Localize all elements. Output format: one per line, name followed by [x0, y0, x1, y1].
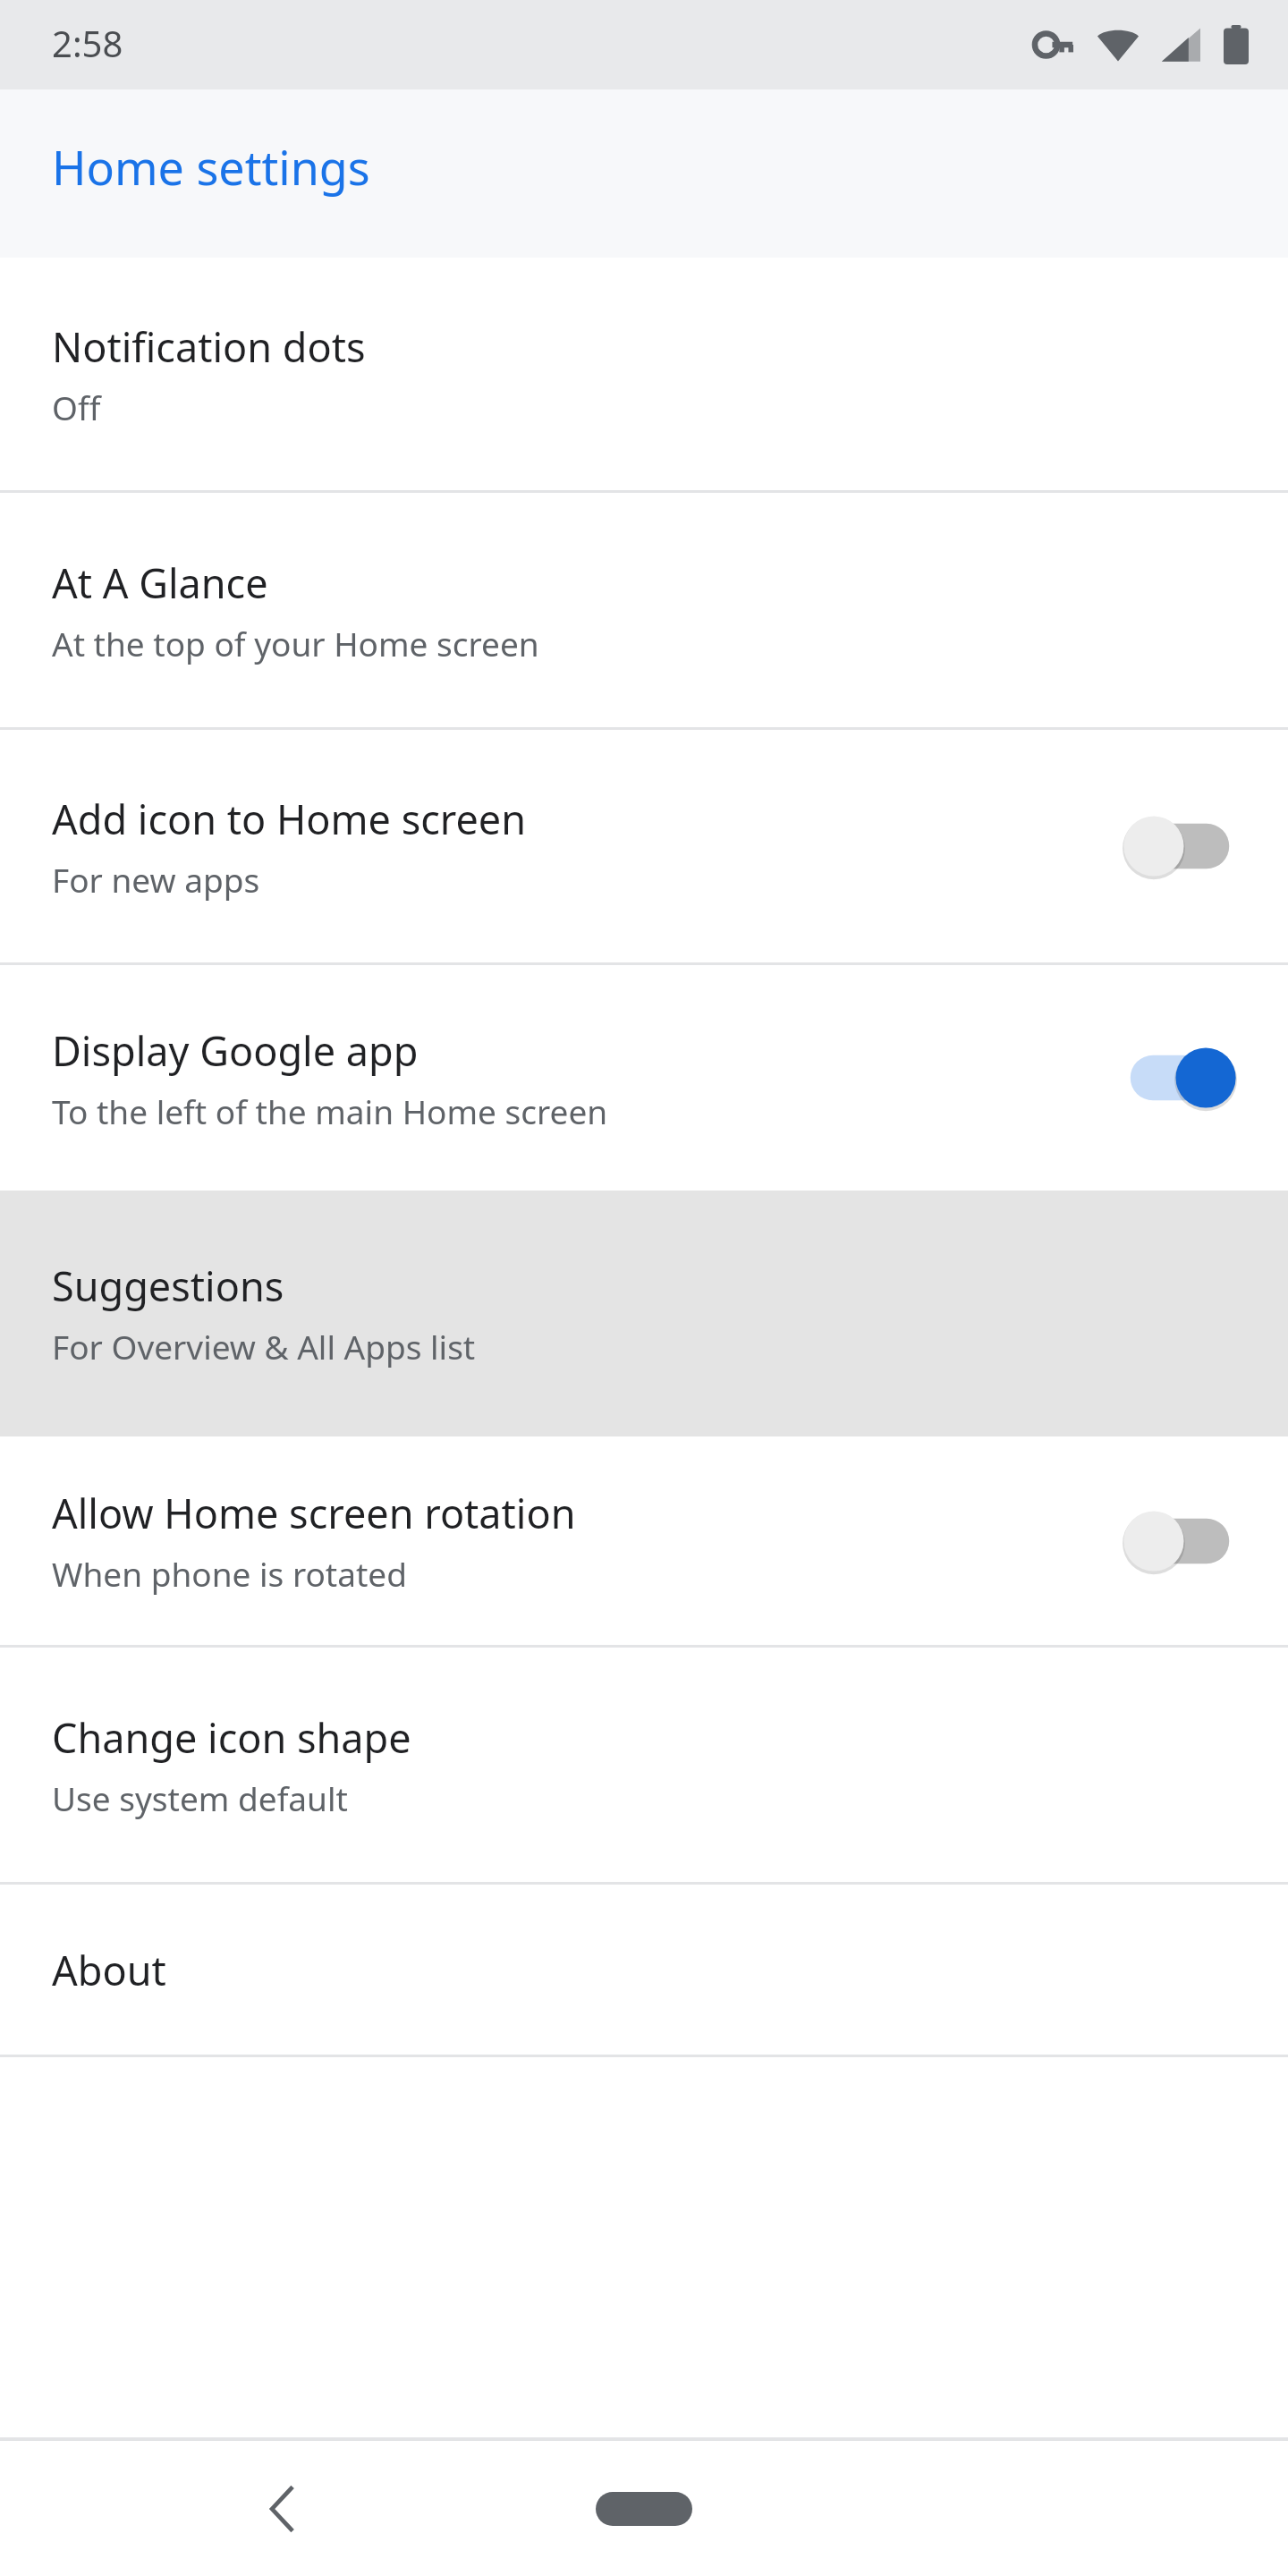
staticText: For Overview & All Apps list [52, 1324, 476, 1368]
button[interactable]: Toggle on [1122, 1037, 1238, 1119]
button[interactable]: Add icon to Home screen [0, 730, 1288, 962]
button[interactable]: Back [234, 2460, 333, 2558]
staticText: Change icon shape [52, 1710, 411, 1765]
staticText: Suggestions [52, 1258, 284, 1313]
button[interactable]: At A Glance [0, 493, 1288, 727]
button[interactable]: Toggle off [1122, 805, 1238, 887]
button[interactable]: Suggestions [0, 1191, 1288, 1436]
button[interactable]: Toggle off [1122, 1500, 1238, 1582]
button[interactable]: Allow Home screen rotation [0, 1436, 1288, 1645]
button[interactable]: Notification dots [0, 258, 1288, 490]
staticText: 2:58 [52, 19, 123, 67]
staticText: At A Glance [52, 555, 268, 610]
staticText: Allow Home screen rotation [52, 1486, 576, 1540]
staticText: About [52, 1943, 166, 1997]
staticText: Home settings [52, 135, 370, 199]
button[interactable]: Change icon shape [0, 1648, 1288, 1882]
button[interactable]: Display Google app [0, 965, 1288, 1191]
staticText: Display Google app [52, 1023, 419, 1078]
button[interactable]: About [0, 1885, 1288, 2055]
staticText: At the top of your Home screen [52, 621, 539, 665]
staticText: When phone is rotated [52, 1551, 407, 1596]
staticText: Notification dots [52, 319, 366, 374]
staticText: For new apps [52, 857, 260, 902]
button[interactable]: Home [577, 2460, 711, 2558]
staticText: Use system default [52, 1775, 348, 1820]
staticText: Add icon to Home screen [52, 792, 527, 846]
staticText: To the left of the main Home screen [52, 1089, 608, 1133]
staticText: Off [52, 385, 101, 429]
